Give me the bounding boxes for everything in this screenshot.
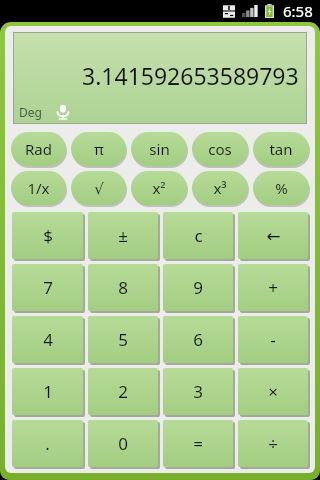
button[interactable]: 3: [163, 368, 233, 415]
button[interactable]: x³: [192, 171, 248, 205]
staticText: 0: [118, 432, 128, 455]
staticText: tan: [269, 139, 293, 159]
staticText: 4: [43, 328, 53, 351]
button[interactable]: Rad: [11, 132, 66, 166]
staticText: 7: [43, 276, 53, 299]
button[interactable]: tan: [253, 132, 309, 166]
staticText: =: [193, 432, 203, 455]
staticText: -: [270, 328, 276, 351]
button[interactable]: c: [163, 212, 233, 259]
button[interactable]: 7: [12, 264, 83, 311]
staticText: 1/x: [27, 178, 50, 198]
staticText: $: [43, 224, 53, 247]
staticText: x³: [213, 178, 227, 198]
staticText: c: [194, 224, 203, 247]
staticText: Deg: [19, 104, 42, 120]
button[interactable]: 0: [88, 420, 158, 467]
staticText: sin: [149, 139, 170, 159]
button[interactable]: Voice input: [55, 104, 71, 120]
staticText: ÷: [268, 432, 278, 455]
staticText: 2: [118, 380, 128, 403]
button[interactable]: .: [12, 420, 83, 467]
staticText: 6: [193, 328, 203, 351]
button[interactable]: 5: [88, 316, 158, 363]
button[interactable]: sin: [131, 132, 187, 166]
button[interactable]: $: [12, 212, 83, 259]
button[interactable]: 1: [12, 368, 83, 415]
button[interactable]: Backspace: [238, 212, 308, 259]
staticText: cos: [208, 139, 232, 159]
staticText: Rad: [25, 139, 52, 159]
button[interactable]: ÷: [238, 420, 308, 467]
staticText: ±: [118, 224, 128, 247]
button[interactable]: 1/x: [11, 171, 66, 205]
staticText: √: [94, 180, 104, 197]
button[interactable]: 8: [88, 264, 158, 311]
staticText: 9: [193, 276, 203, 299]
button[interactable]: %: [253, 171, 309, 205]
button[interactable]: ×: [238, 368, 308, 415]
button[interactable]: 9: [163, 264, 233, 311]
staticText: π: [94, 139, 104, 159]
button[interactable]: ±: [88, 212, 158, 259]
staticText: 8: [118, 276, 128, 299]
staticText: x²: [152, 178, 166, 198]
staticText: 1: [43, 380, 53, 403]
button[interactable]: +: [238, 264, 308, 311]
staticText: +: [268, 276, 278, 299]
staticText: 3: [193, 380, 203, 403]
staticText: 3.141592653589793: [82, 60, 299, 91]
button[interactable]: 4: [12, 316, 83, 363]
staticText: ←: [266, 226, 281, 246]
button[interactable]: 6: [163, 316, 233, 363]
button[interactable]: 2: [88, 368, 158, 415]
staticText: .: [45, 432, 50, 455]
button[interactable]: π: [71, 132, 126, 166]
staticText: 5: [118, 328, 128, 351]
button[interactable]: -: [238, 316, 308, 363]
button[interactable]: =: [163, 420, 233, 467]
staticText: ×: [268, 380, 278, 403]
button[interactable]: cos: [192, 132, 248, 166]
staticText: %: [275, 178, 288, 198]
staticText: 6:58: [283, 1, 313, 21]
button[interactable]: x²: [131, 171, 187, 205]
button[interactable]: √: [71, 171, 126, 205]
